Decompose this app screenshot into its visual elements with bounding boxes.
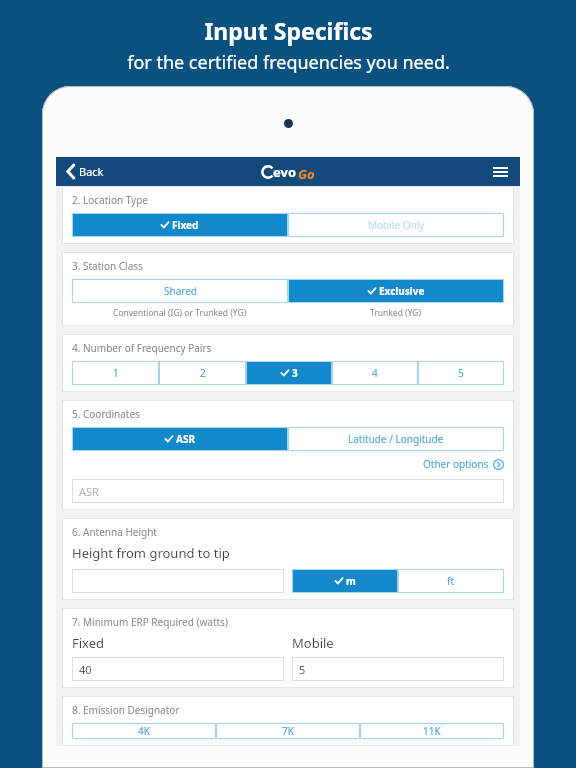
staticText: Conventional (IG) or Trunked (YG) <box>113 307 247 319</box>
button[interactable]: 5 <box>292 657 504 681</box>
staticText: 8. Emission Designator <box>72 703 180 717</box>
staticText: Latitude / Longitude <box>348 432 444 446</box>
button[interactable]: Shared <box>72 279 288 303</box>
button[interactable]: Fixed <box>72 213 288 237</box>
staticText: 11K <box>423 724 441 738</box>
staticText: 4 <box>372 366 378 380</box>
button[interactable]: 4K <box>72 723 216 739</box>
staticText: Shared <box>164 284 197 298</box>
staticText: ft <box>447 574 455 588</box>
staticText: 2 <box>200 366 206 380</box>
staticText: 4K <box>138 724 150 738</box>
staticText: m <box>346 574 356 588</box>
staticText: Back <box>79 164 104 179</box>
staticText: Exclusive <box>379 284 425 298</box>
staticText: Fixed <box>72 634 284 652</box>
staticText: 5. Coordinates <box>72 407 140 421</box>
staticText: 5 <box>299 662 306 677</box>
staticText: Go <box>298 165 315 183</box>
staticText: 3. Station Class <box>72 259 143 273</box>
button[interactable]: 1 <box>72 361 159 385</box>
staticText: Height from ground to tip <box>72 544 230 562</box>
button[interactable]: Back <box>56 157 115 186</box>
button[interactable]: Mobile Only <box>288 213 504 237</box>
button[interactable]: Menu <box>481 157 520 186</box>
staticText: Mobile Only <box>368 218 425 232</box>
staticText: Trunked (YG) <box>370 307 422 319</box>
button[interactable]: Other options <box>72 455 504 473</box>
staticText: 3 <box>292 366 298 380</box>
button[interactable] <box>72 569 284 593</box>
button[interactable]: 7K <box>216 723 360 739</box>
staticText: ASR <box>176 432 195 446</box>
staticText: 7K <box>282 724 294 738</box>
button[interactable]: ft <box>398 569 504 593</box>
button[interactable]: Latitude / Longitude <box>288 427 504 451</box>
button[interactable]: ASR <box>72 427 288 451</box>
staticText: 40 <box>79 662 92 677</box>
staticText: ASR <box>79 484 99 499</box>
staticText: Other options <box>423 457 489 471</box>
staticText: for the certified frequencies you need. <box>127 50 450 75</box>
button[interactable]: m <box>292 569 398 593</box>
staticText: Fixed <box>172 218 199 232</box>
button[interactable]: ASR <box>72 479 504 503</box>
staticText: 1 <box>113 366 119 380</box>
staticText: 4. Number of Frequency Pairs <box>72 341 212 355</box>
staticText: Mobile <box>292 634 504 652</box>
staticText: 6. Antenna Height <box>72 525 157 539</box>
staticText: Input Specifics <box>204 15 373 46</box>
button[interactable]: 11K <box>360 723 504 739</box>
staticText: 5 <box>458 366 464 380</box>
button[interactable]: 4 <box>332 361 418 385</box>
button[interactable]: 5 <box>418 361 504 385</box>
button[interactable]: 40 <box>72 657 284 681</box>
button[interactable]: 3 <box>246 361 332 385</box>
staticText: evo <box>273 163 297 181</box>
staticText: 2. Location Type <box>72 193 148 207</box>
button[interactable]: 2 <box>159 361 246 385</box>
button[interactable]: Exclusive <box>288 279 504 303</box>
staticText: 7. Minimum ERP Required (watts) <box>72 615 228 629</box>
